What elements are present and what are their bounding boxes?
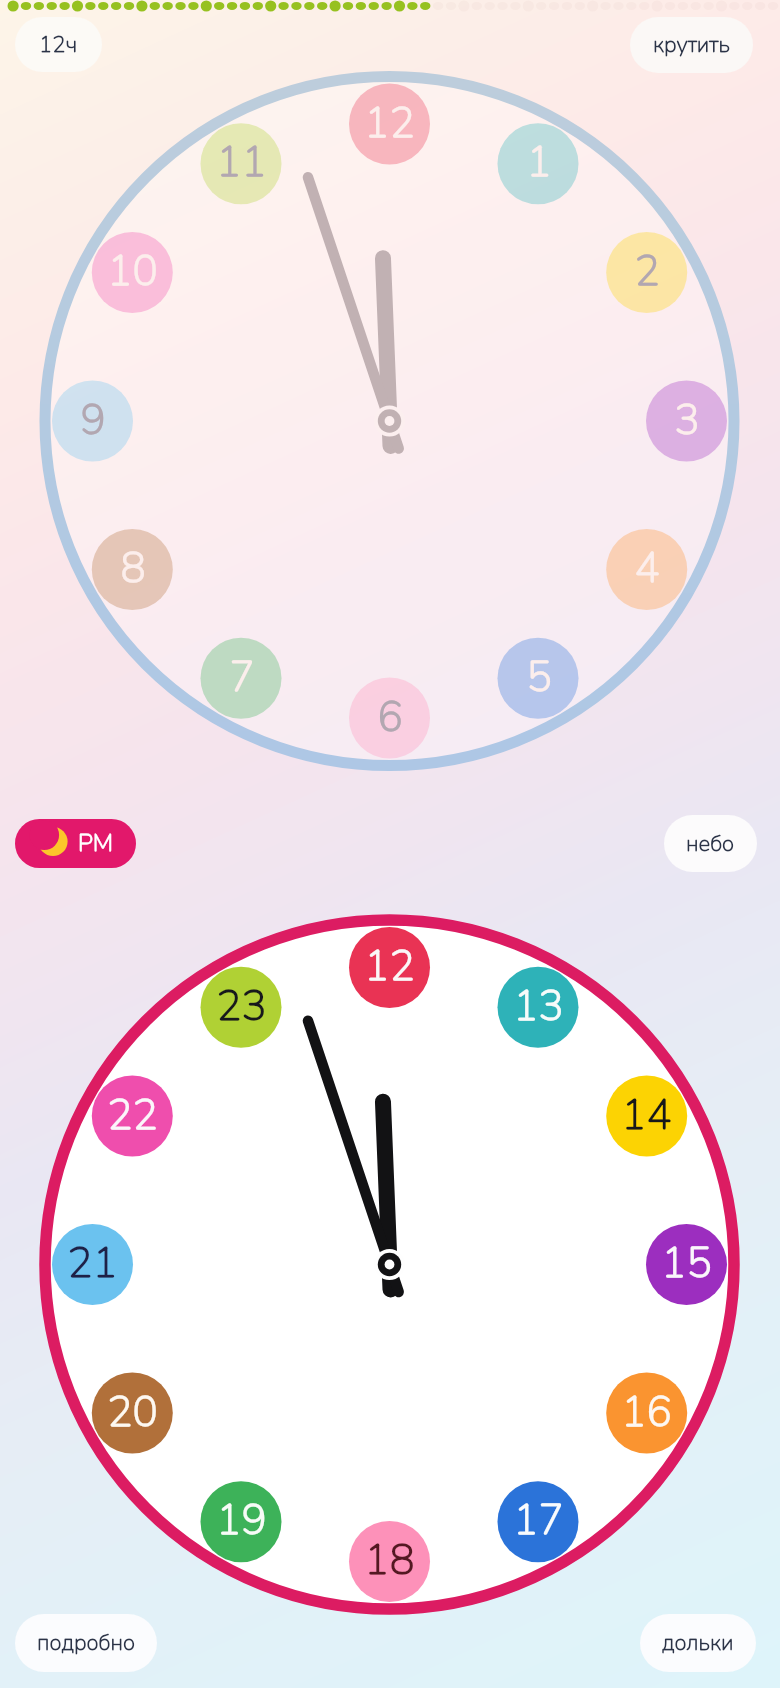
staticText: подробно <box>37 1628 135 1658</box>
button[interactable]: 18 <box>349 1520 430 1601</box>
button[interactable]: 20 <box>92 1372 173 1453</box>
button[interactable]: подробно <box>15 1614 157 1672</box>
button[interactable]: 4 <box>606 528 687 609</box>
staticText: 11 <box>216 134 267 191</box>
staticText: 16 <box>621 1384 672 1441</box>
button[interactable]: 11 <box>201 122 282 203</box>
staticText: 17 <box>513 1492 564 1549</box>
staticText: 2 <box>634 243 660 300</box>
button[interactable]: 17 <box>498 1480 579 1561</box>
staticText: 12 <box>364 938 415 995</box>
button[interactable]: небо <box>664 815 757 872</box>
staticText: 6 <box>377 689 403 746</box>
staticText: 15 <box>661 1235 712 1292</box>
staticText: 3 <box>674 392 700 449</box>
staticText: 12 <box>364 95 415 152</box>
staticText: 8 <box>120 540 146 597</box>
staticText: 9 <box>80 392 106 449</box>
button[interactable]: 5 <box>498 637 579 718</box>
staticText: PM <box>78 827 114 860</box>
button[interactable]: крутить <box>630 17 753 73</box>
staticText: 1 <box>526 134 552 191</box>
button[interactable]: 9 <box>52 380 133 461</box>
staticText: 10 <box>107 243 158 300</box>
button[interactable]: 22 <box>92 1075 173 1156</box>
staticText: 14 <box>621 1087 672 1144</box>
staticText: 19 <box>216 1492 267 1549</box>
button[interactable]: 23 <box>201 966 282 1047</box>
staticText: 4 <box>634 540 660 597</box>
staticText: крутить <box>653 30 730 60</box>
button[interactable]: дольки <box>640 1614 756 1672</box>
button[interactable]: 12 <box>349 83 430 164</box>
staticText: 20 <box>107 1384 158 1441</box>
staticText: 13 <box>513 978 564 1035</box>
button[interactable]: 21 <box>52 1223 133 1304</box>
button[interactable]: PM <box>15 819 136 868</box>
staticText: 22 <box>107 1087 158 1144</box>
staticText: 12ч <box>39 30 78 60</box>
button[interactable]: 3 <box>646 380 727 461</box>
button[interactable]: 14 <box>606 1075 687 1156</box>
staticText: 23 <box>216 978 267 1035</box>
button[interactable]: 15 <box>646 1223 727 1304</box>
button[interactable]: 12 <box>349 926 430 1007</box>
button[interactable]: 8 <box>92 528 173 609</box>
button[interactable]: 13 <box>498 966 579 1047</box>
button[interactable]: 7 <box>201 637 282 718</box>
button[interactable]: 12ч <box>15 17 102 72</box>
staticText: небо <box>686 829 735 859</box>
staticText: 5 <box>526 649 552 706</box>
button[interactable]: 10 <box>92 231 173 312</box>
button[interactable]: 2 <box>606 231 687 312</box>
button[interactable]: 1 <box>498 122 579 203</box>
staticText: 18 <box>364 1532 415 1589</box>
button[interactable]: 16 <box>606 1372 687 1453</box>
button[interactable]: 19 <box>201 1480 282 1561</box>
staticText: 21 <box>67 1235 118 1292</box>
staticText: 7 <box>229 649 255 706</box>
staticText: дольки <box>662 1628 734 1658</box>
button[interactable]: 6 <box>349 677 430 758</box>
